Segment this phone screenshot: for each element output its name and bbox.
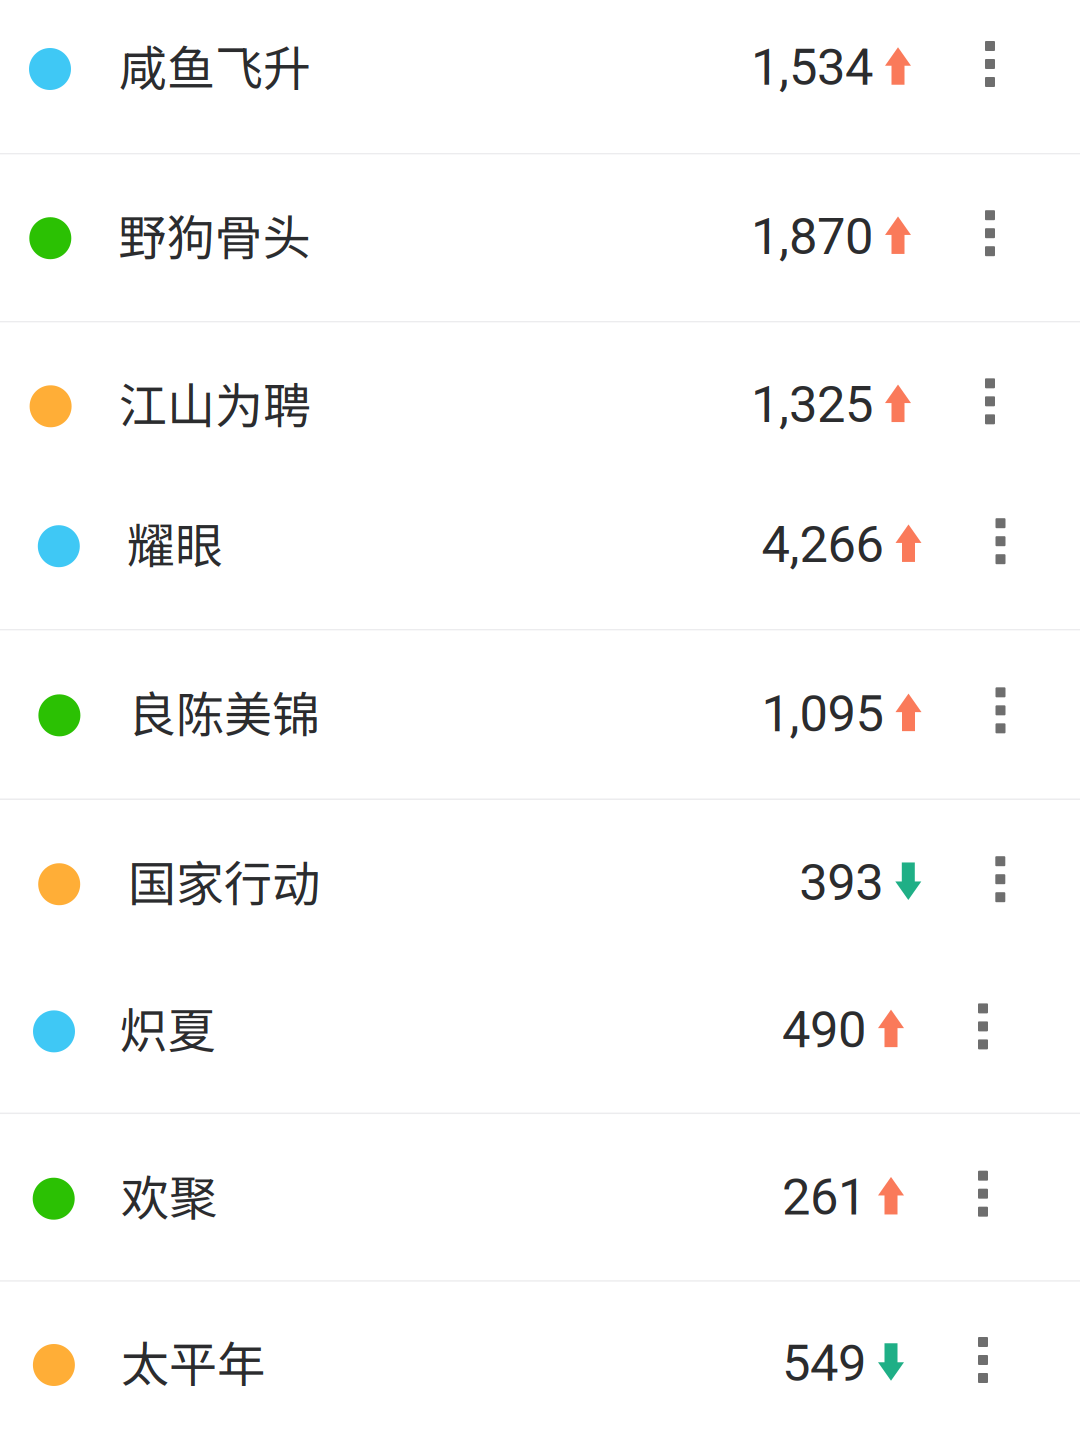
staticText: 4,266 [761, 515, 883, 574]
staticText: 江山为聘 [119, 367, 311, 437]
button[interactable]: More options [912, 1286, 1080, 1440]
staticText: 261 [782, 1167, 866, 1227]
staticText: 1,870 [751, 207, 873, 266]
staticText: 490 [782, 1000, 866, 1060]
staticText: 393 [799, 853, 883, 912]
staticText: 太平年 [121, 1326, 265, 1396]
staticText: 炽夏 [120, 993, 216, 1062]
staticText: 欢聚 [121, 1160, 217, 1229]
button[interactable]: More options [912, 1116, 1080, 1282]
staticText: 耀眼 [127, 507, 223, 577]
staticText: 1,534 [751, 38, 873, 97]
button[interactable]: More options [912, 330, 1080, 483]
staticText: 1,325 [751, 375, 873, 434]
button[interactable]: More options [912, 0, 1080, 145]
staticText: 549 [782, 1334, 866, 1393]
button[interactable]: More options [912, 806, 1080, 962]
button[interactable]: More options [912, 155, 1080, 321]
staticText: 良陈美锦 [128, 677, 320, 746]
staticText: 国家行动 [128, 845, 320, 915]
button[interactable]: More options [912, 631, 1080, 799]
staticText: 1,095 [761, 684, 883, 744]
staticText: 野狗骨头 [118, 199, 310, 269]
button[interactable]: More options [912, 953, 1080, 1109]
staticText: 咸鱼飞升 [119, 30, 311, 100]
button[interactable]: More options [912, 470, 1080, 623]
